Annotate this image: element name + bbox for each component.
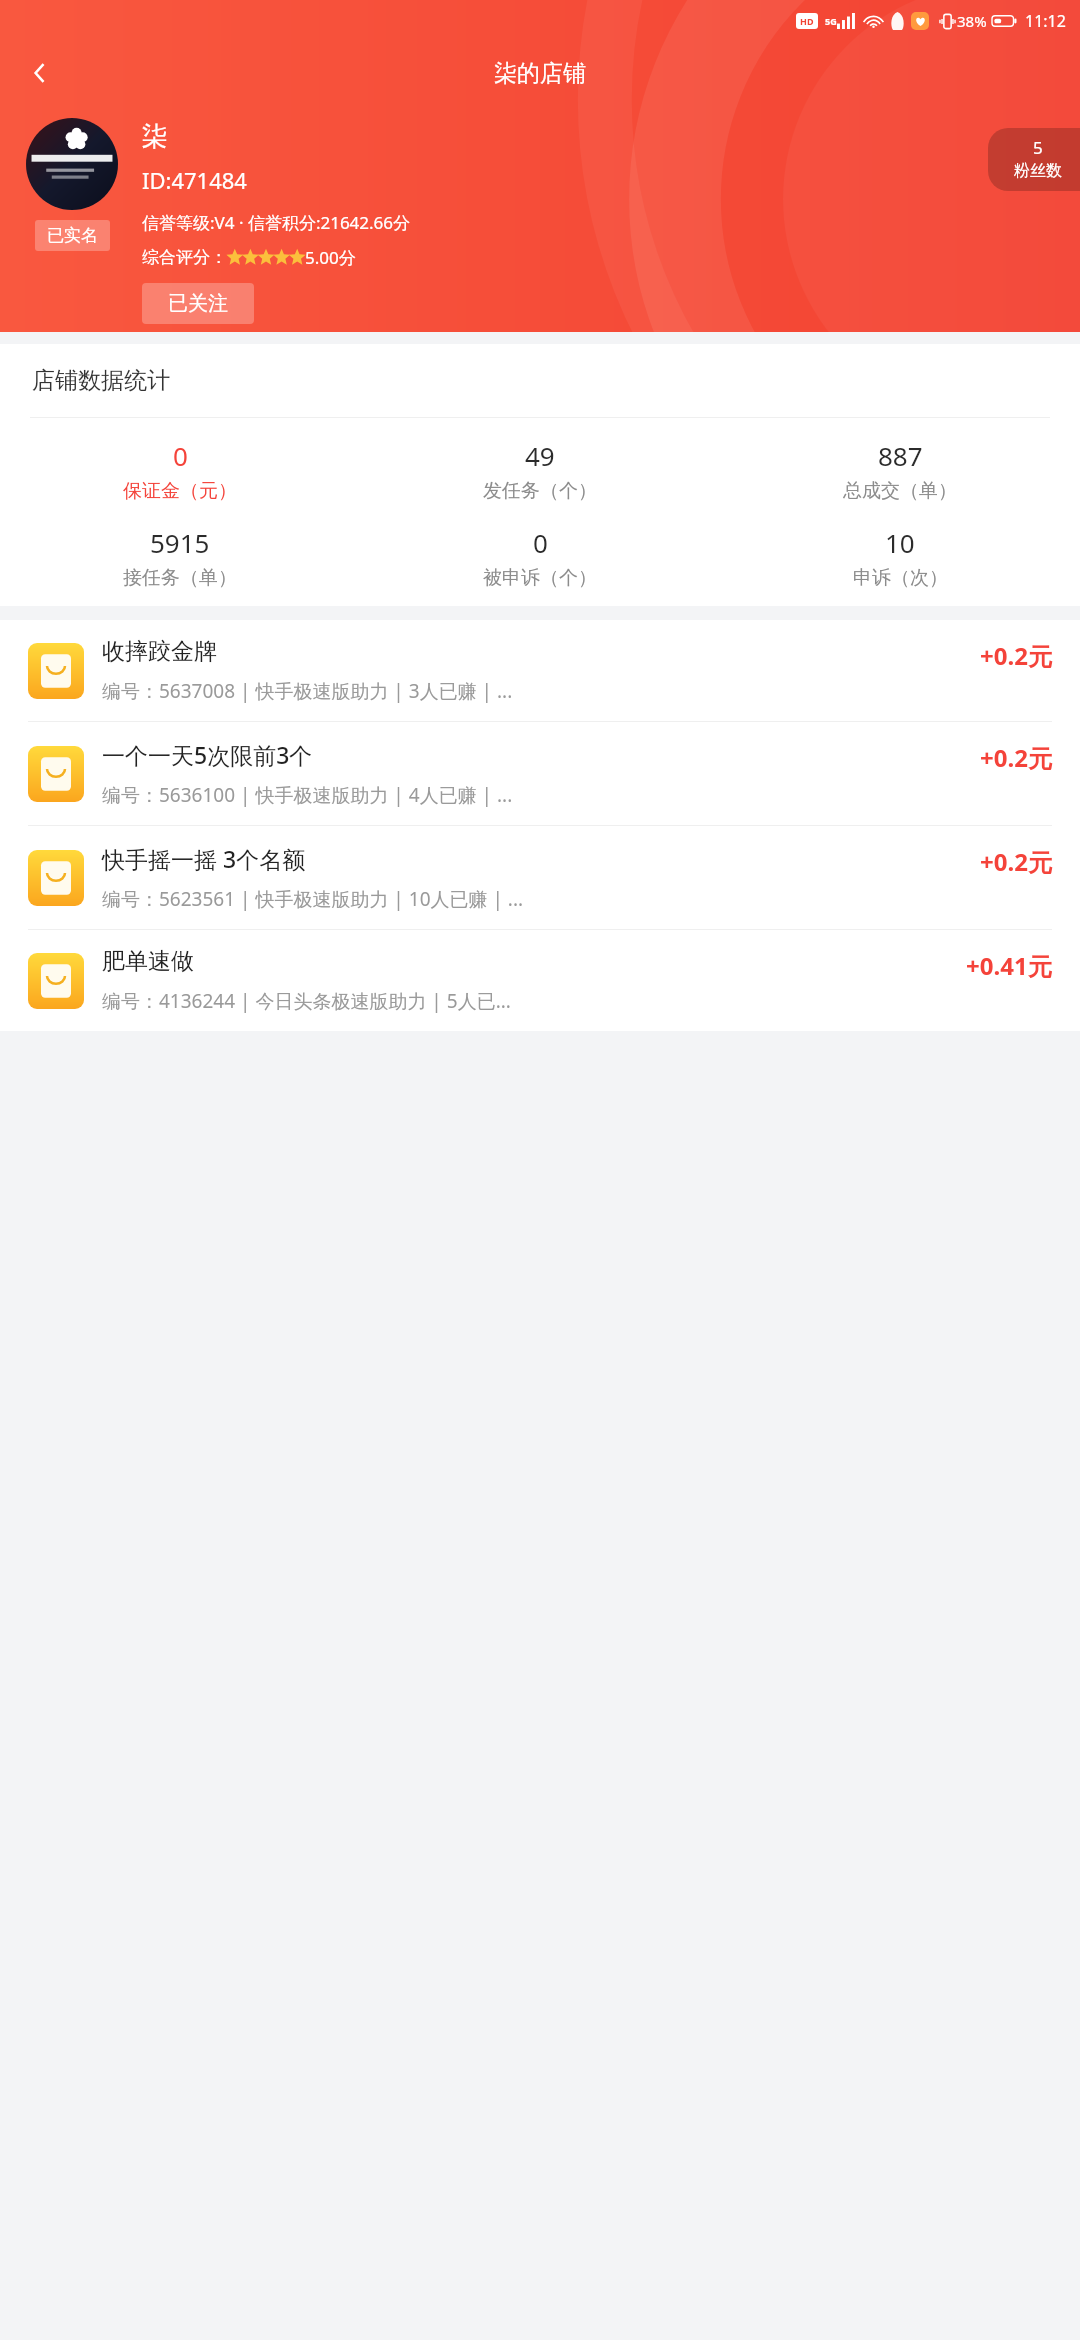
staticText: 已关注 xyxy=(168,291,228,316)
staticText: 10 xyxy=(885,525,915,560)
staticText: 信誉等级:V4 · 信誉积分:21642.66分 xyxy=(142,211,411,234)
staticText: 发任务（个） xyxy=(483,479,597,503)
staticText: 编号：4136244 | 今日头条极速版助力 | 5人已... xyxy=(102,988,511,1014)
staticText: 被申诉（个） xyxy=(483,566,597,590)
staticText: 5915 xyxy=(150,525,210,560)
button[interactable]: 5 xyxy=(988,128,1080,191)
staticText: 保证金（元） xyxy=(123,479,237,503)
staticText: 5G xyxy=(825,15,837,27)
button[interactable] xyxy=(26,118,118,210)
staticText: 5.00分 xyxy=(305,246,356,269)
button[interactable]: 0 xyxy=(0,438,360,503)
staticText: +0.2元 xyxy=(980,639,1052,672)
staticText: ID:471484 xyxy=(142,165,247,195)
staticText: 总成交（单） xyxy=(843,479,957,503)
button[interactable]: 10 xyxy=(720,525,1080,590)
staticText: 申诉（次） xyxy=(853,566,948,590)
staticText: 0 xyxy=(533,525,548,560)
staticText: 38% xyxy=(957,11,987,31)
staticText: 粉丝数 xyxy=(1014,161,1062,181)
staticText: 49 xyxy=(525,438,555,473)
staticText: 编号：5623561 | 快手极速版助力 | 10人已赚 | ... xyxy=(102,886,524,912)
staticText: +0.2元 xyxy=(980,845,1052,878)
button[interactable]: 快手摇一摇 3个名额 xyxy=(0,826,1080,929)
staticText: 柒的店铺 xyxy=(494,59,586,88)
staticText: 11:12 xyxy=(1025,10,1066,32)
button[interactable]: 收摔跤金牌 xyxy=(0,620,1080,721)
staticText: 887 xyxy=(878,438,923,473)
staticText: 快手摇一摇 3个名额 xyxy=(102,843,306,874)
button[interactable]: 887 xyxy=(720,438,1080,503)
staticText: +0.2元 xyxy=(980,741,1052,774)
staticText: 已实名 xyxy=(47,225,98,246)
staticText: 编号：5637008 | 快手极速版助力 | 3人已赚 | ... xyxy=(102,678,513,704)
staticText: 店铺数据统计 xyxy=(32,366,170,395)
staticText: 5 xyxy=(1033,136,1043,159)
button[interactable]: 0 xyxy=(360,525,720,590)
staticText: HD xyxy=(800,15,814,27)
staticText: 编号：5636100 | 快手极速版助力 | 4人已赚 | ... xyxy=(102,782,513,808)
staticText: +0.41元 xyxy=(966,949,1052,982)
staticText: 综合评分： xyxy=(142,247,227,268)
button[interactable]: 已实名 xyxy=(35,220,110,251)
button[interactable]: Back xyxy=(14,47,66,99)
staticText: 柒 xyxy=(142,120,168,153)
staticText: 接任务（单） xyxy=(123,566,237,590)
button[interactable]: 49 xyxy=(360,438,720,503)
staticText: 收摔跤金牌 xyxy=(102,637,217,666)
staticText: 0 xyxy=(173,438,188,473)
staticText: 一个一天5次限前3个 xyxy=(102,739,313,770)
button[interactable]: 一个一天5次限前3个 xyxy=(0,722,1080,825)
button[interactable]: 5915 xyxy=(0,525,360,590)
button[interactable]: 肥单速做 xyxy=(0,930,1080,1031)
button[interactable]: 已关注 xyxy=(142,283,254,324)
staticText: 肥单速做 xyxy=(102,947,194,976)
